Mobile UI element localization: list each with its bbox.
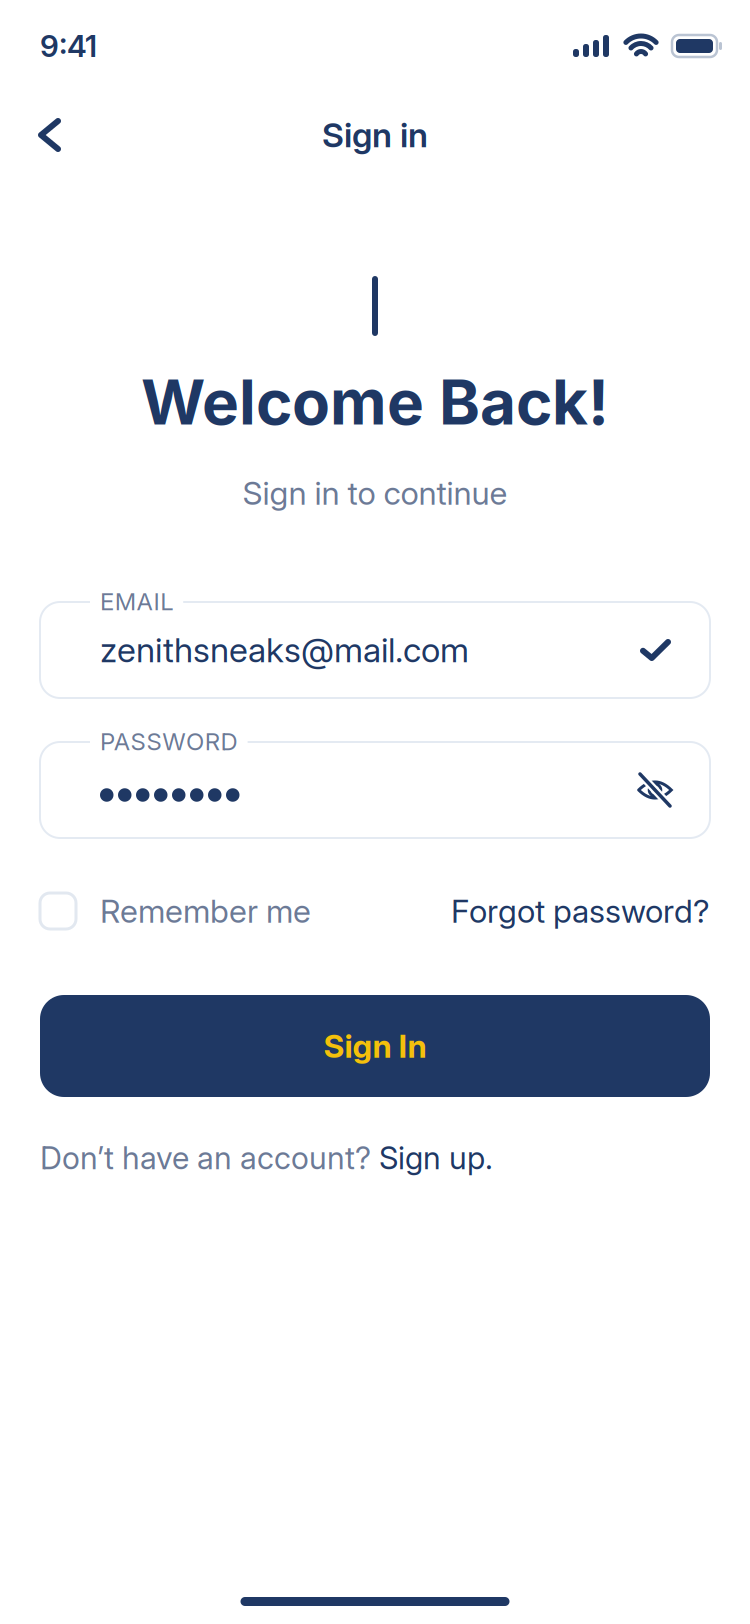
button[interactable]: Sign In [40,995,710,1097]
staticText: 9:41 [40,28,97,64]
staticText: Sign In [323,1027,426,1065]
staticText: Remember me [100,892,311,930]
button[interactable]: Back [0,101,58,169]
button[interactable]: Forgot password? [451,892,710,930]
staticText: Don’t have an account? [40,1139,379,1177]
staticText: Sign up. [379,1139,493,1177]
staticText: Sign in [322,114,428,155]
staticText: Sign in to continue [242,474,507,512]
button[interactable]: Sign up. [379,1139,493,1177]
staticText: PASSWORD [100,727,238,756]
button[interactable]: Remember me [40,892,311,930]
staticText: zenithsneaks@mail.com [100,629,469,670]
staticText: Forgot password? [451,892,710,930]
staticText: EMAIL [100,587,173,616]
staticText: Welcome Back! [141,364,609,439]
button[interactable]: Show password [638,773,672,807]
